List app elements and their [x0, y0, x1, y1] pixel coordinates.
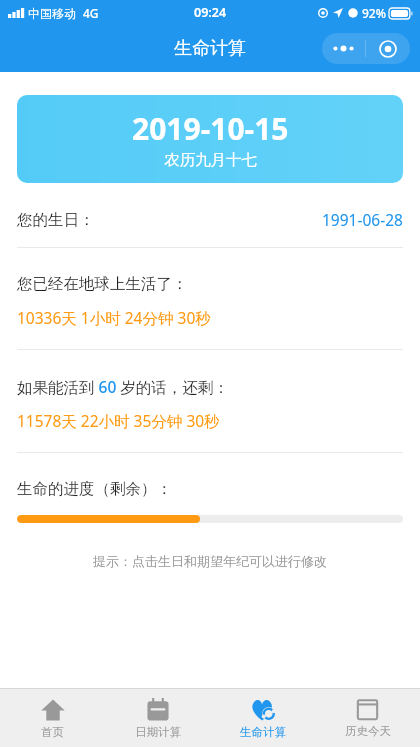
staticText: 您的生日：	[17, 210, 95, 230]
button[interactable]: More options	[322, 33, 410, 64]
staticText: 92%	[362, 5, 386, 21]
staticText: 生命的进度（剩余）：	[17, 479, 172, 499]
other: More options	[322, 33, 365, 64]
staticText: 11578天 22小时 35分钟 30秒	[17, 410, 220, 431]
staticText: 首页	[41, 725, 64, 739]
staticText: 农历九月十七	[164, 150, 257, 170]
staticText: 历史今天	[345, 724, 391, 738]
button[interactable]: 生命计算	[210, 689, 315, 747]
button[interactable]: 您的生日：	[17, 209, 403, 230]
staticText: 提示：点击生日和期望年纪可以进行修改	[93, 553, 327, 569]
staticText: 1991-06-28	[322, 209, 403, 230]
button[interactable]: 日期计算	[105, 689, 210, 747]
staticText: 中国移动	[28, 6, 76, 21]
staticText: 您已经在地球上生活了：	[17, 274, 188, 294]
button[interactable]: 历史今天	[315, 689, 420, 747]
staticText: 生命计算	[240, 725, 286, 739]
button[interactable]: 首页	[0, 689, 105, 747]
staticText: 2019-10-15	[132, 108, 289, 149]
button[interactable]: 2019-10-15	[17, 95, 403, 183]
other: Close mini program	[366, 33, 410, 64]
staticText: 09:24	[194, 4, 227, 21]
staticText: 4G	[83, 5, 99, 21]
staticText: 生命计算	[174, 37, 246, 60]
staticText: 日期计算	[135, 725, 181, 739]
staticText: 如果能活到 60 岁的话，还剩：	[17, 376, 229, 397]
staticText: 10336天 1小时 24分钟 30秒	[17, 307, 211, 328]
